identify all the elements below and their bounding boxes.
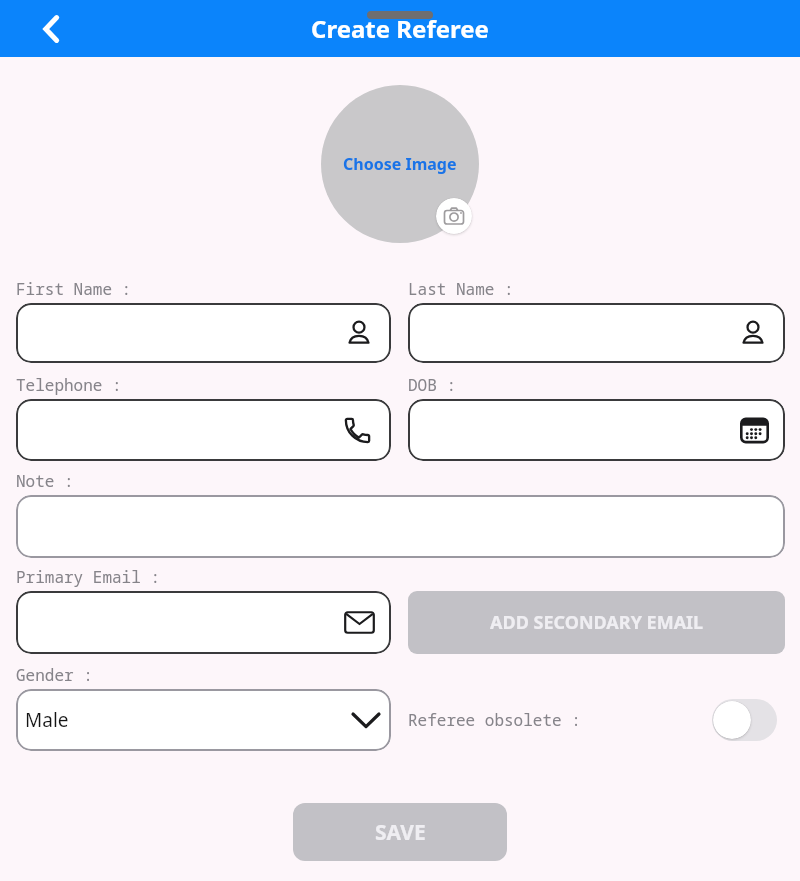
staticText: Create Referee — [311, 12, 489, 45]
button[interactable]: Choose Image — [321, 85, 479, 243]
button[interactable] — [436, 198, 472, 234]
button[interactable]: Male — [16, 689, 391, 751]
staticText: ADD SECONDARY EMAIL — [490, 610, 704, 635]
staticText: Note : — [16, 470, 74, 492]
button[interactable]: SAVE — [293, 803, 507, 861]
button[interactable] — [16, 303, 391, 363]
staticText: DOB : — [408, 374, 457, 396]
staticText: Primary Email : — [16, 566, 161, 588]
staticText: Referee obsolete : — [408, 709, 581, 731]
staticText: Male — [25, 707, 69, 733]
staticText: Telephone : — [16, 374, 122, 396]
staticText: Choose Image — [343, 153, 457, 175]
button[interactable] — [16, 399, 391, 461]
staticText: First Name : — [16, 278, 132, 300]
staticText: Last Name : — [408, 278, 514, 300]
button[interactable] — [16, 495, 785, 558]
button[interactable] — [16, 591, 391, 654]
button[interactable] — [712, 699, 777, 741]
staticText: Gender : — [16, 664, 93, 686]
button[interactable] — [30, 7, 74, 51]
staticText: SAVE — [375, 818, 426, 847]
button[interactable] — [408, 303, 785, 363]
button[interactable] — [408, 399, 785, 461]
button[interactable]: ADD SECONDARY EMAIL — [408, 591, 785, 654]
